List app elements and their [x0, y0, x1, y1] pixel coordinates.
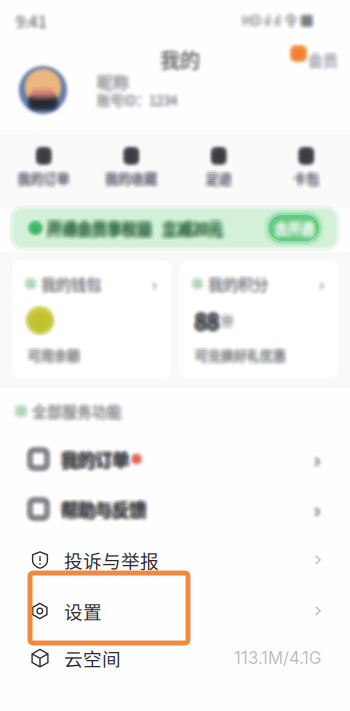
- staticText: HD ıl ıl 令 ■: [245, 14, 316, 33]
- staticText: 我的订单: [59, 449, 127, 474]
- staticText: 开通会员享权益: [49, 219, 154, 240]
- staticText: 开通会员享权益: [43, 218, 148, 239]
- staticText: 我的: [156, 46, 196, 75]
- button[interactable]: 我的积分: [179, 260, 338, 378]
- staticText: 我的: [157, 43, 197, 72]
- staticText: 可兑换好礼优惠: [192, 345, 283, 363]
- staticText: ›: [318, 442, 324, 471]
- staticText: 账号ID：1234: [96, 89, 176, 108]
- staticText: 可兑换好礼优惠: [191, 342, 282, 360]
- staticText: ›: [317, 269, 322, 292]
- staticText: 我的订单: [62, 443, 130, 468]
- staticText: 9:41: [13, 13, 44, 35]
- staticText: 我的积分: [212, 271, 272, 293]
- staticText: 昵称: [95, 66, 127, 90]
- staticText: 我的收藏: [102, 166, 154, 184]
- staticText: 我的钱包: [45, 270, 105, 292]
- staticText: ›: [318, 445, 324, 474]
- staticText: 立减20元: [165, 220, 226, 241]
- button[interactable]: 帮助与反馈: [0, 486, 350, 532]
- staticText: 足迹: [207, 170, 233, 188]
- staticText: 我的钱包: [43, 271, 103, 293]
- staticText: 我的订单: [64, 446, 132, 472]
- staticText: ›: [318, 269, 323, 292]
- staticText: ›: [321, 272, 326, 295]
- staticText: 开通会员享权益: [42, 221, 147, 242]
- staticText: ›: [322, 273, 327, 296]
- staticText: ›: [313, 444, 319, 473]
- staticText: 我的订单: [65, 448, 133, 473]
- staticText: 可兑换好礼优惠: [196, 348, 287, 367]
- button[interactable]: 设置: [0, 587, 350, 635]
- staticText: ›: [313, 448, 319, 477]
- button[interactable]: 足迹: [175, 146, 262, 190]
- button[interactable]: 我的钱包: [12, 260, 171, 378]
- button[interactable]: 云空间: [0, 634, 350, 682]
- staticText: 我的订单: [65, 443, 133, 468]
- staticText: 我的: [163, 46, 203, 75]
- staticText: 足迹: [202, 166, 228, 184]
- button[interactable]: 我的订单: [0, 436, 350, 482]
- staticText: 我的订单: [60, 443, 128, 468]
- staticText: 可用余额: [24, 344, 76, 362]
- staticText: HD ıl ıl 令 ■: [238, 8, 309, 28]
- staticText: ›: [317, 275, 322, 298]
- staticText: 会员: [311, 51, 341, 72]
- staticText: 我的: [164, 42, 204, 71]
- staticText: 我的收藏: [102, 171, 154, 189]
- staticText: 昵称: [94, 70, 126, 93]
- staticText: 我的: [162, 42, 202, 71]
- staticText: 开通会员享权益: [46, 219, 151, 240]
- staticText: 我的订单: [64, 447, 132, 472]
- button[interactable]: 投诉与举报: [0, 536, 350, 584]
- staticText: 我的订单: [18, 165, 70, 183]
- staticText: 分: [222, 312, 234, 329]
- staticText: HD ıl ıl 令 ■: [245, 13, 316, 32]
- staticText: 我的: [158, 48, 198, 77]
- staticText: 足迹: [202, 167, 228, 185]
- staticText: 我的积分: [208, 270, 268, 292]
- staticText: 账号ID：1234: [96, 86, 176, 106]
- staticText: 足迹: [202, 168, 228, 186]
- staticText: 88: [197, 306, 221, 337]
- staticText: 可用余额: [28, 346, 80, 364]
- staticText: 去开通: [273, 217, 312, 237]
- staticText: 足迹: [204, 166, 230, 184]
- staticText: 我的: [159, 44, 199, 73]
- staticText: 9:41: [20, 6, 51, 29]
- staticText: 卡包: [291, 167, 317, 185]
- staticText: 我的订单: [62, 444, 130, 469]
- staticText: 会员: [312, 50, 342, 71]
- staticText: 去开通: [276, 217, 315, 237]
- staticText: 可兑换好礼优惠: [193, 347, 284, 365]
- staticText: 全部服务功能: [28, 401, 118, 422]
- staticText: 可兑换好礼优惠: [191, 345, 282, 363]
- staticText: 我的: [159, 41, 199, 70]
- staticText: 分: [220, 312, 232, 329]
- staticText: 我的: [162, 43, 202, 72]
- staticText: 去开通: [274, 220, 313, 239]
- staticText: 88: [192, 303, 216, 334]
- staticText: 我的积分: [204, 273, 264, 296]
- staticText: 88: [190, 304, 214, 335]
- staticText: 开通会员享权益: [43, 216, 148, 238]
- button[interactable]: 我的收藏: [87, 146, 175, 190]
- staticText: 我的: [157, 49, 197, 78]
- button[interactable]: 我的订单: [0, 146, 87, 190]
- staticText: 我的钱包: [37, 276, 97, 298]
- staticText: 卡包: [292, 165, 318, 183]
- staticText: 卡包: [293, 169, 319, 187]
- staticText: 可兑换好礼优惠: [195, 345, 286, 363]
- button[interactable]: 卡包: [262, 146, 350, 190]
- staticText: ›: [316, 495, 322, 524]
- staticText: 足迹: [204, 169, 230, 187]
- staticText: 我的订单: [59, 446, 127, 472]
- staticText: ›: [311, 497, 317, 526]
- staticText: 账号ID：1234: [96, 88, 176, 107]
- staticText: 可兑换好礼优惠: [195, 344, 286, 362]
- staticText: 足迹: [206, 165, 232, 183]
- staticText: 9:41: [15, 5, 46, 28]
- staticText: 我的收藏: [104, 167, 156, 185]
- staticText: 我的积分: [209, 269, 269, 291]
- staticText: 卡包: [295, 172, 321, 191]
